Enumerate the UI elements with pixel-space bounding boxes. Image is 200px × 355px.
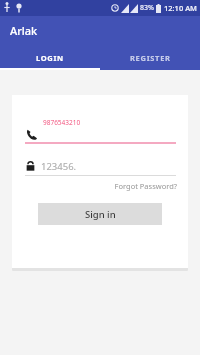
button[interactable]: LOGIN: [0, 45, 100, 70]
button[interactable]: Forgot Password?: [12, 180, 188, 192]
button[interactable]: Sign in: [38, 203, 162, 225]
staticText: 123456.: [41, 160, 77, 173]
button[interactable]: REGISTER: [100, 45, 200, 70]
staticText: LOGIN: [36, 53, 64, 63]
staticText: Forgot Password?: [12, 181, 177, 191]
staticText: Arlak: [10, 23, 38, 38]
staticText: 9876543210: [43, 118, 81, 127]
staticText: REGISTER: [130, 53, 171, 63]
staticText: Sign in: [85, 208, 116, 221]
staticText: 83%: [140, 3, 154, 13]
staticText: 12:10 AM: [164, 3, 197, 13]
other: Password: [25, 161, 36, 172]
other: Phone number: [25, 128, 38, 141]
